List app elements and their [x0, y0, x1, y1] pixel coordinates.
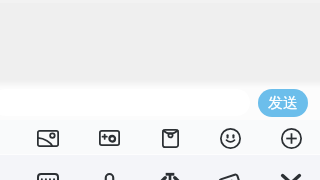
- button[interactable]: Red packet: [152, 126, 188, 150]
- button[interactable]: Card: [212, 173, 248, 180]
- button[interactable]: Photo: [30, 126, 66, 150]
- button[interactable]: Camera: [91, 126, 127, 150]
- button[interactable]: More: [273, 126, 309, 150]
- button[interactable]: Text size: [152, 173, 188, 180]
- button[interactable]: 发送: [258, 89, 308, 117]
- staticText: 发送: [268, 94, 298, 113]
- button[interactable]: Collapse: [273, 173, 309, 180]
- button[interactable]: Voice input: [91, 173, 127, 180]
- button[interactable]: Keyboard: [30, 173, 66, 180]
- button[interactable]: Emoji: [212, 126, 248, 150]
